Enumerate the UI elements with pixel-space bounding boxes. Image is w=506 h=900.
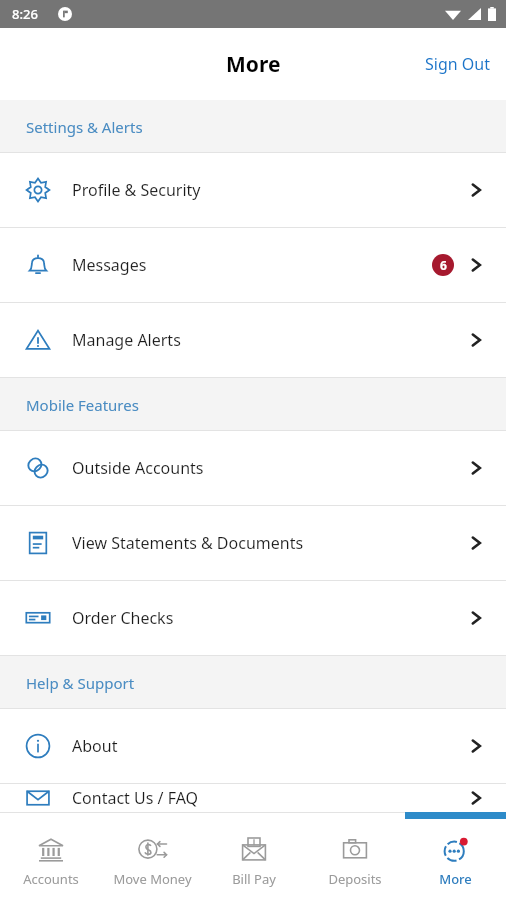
staticText: Manage Alerts bbox=[72, 329, 468, 351]
staticText: Mobile Features bbox=[26, 395, 139, 415]
staticText: 6 bbox=[440, 257, 447, 273]
button[interactable]: About bbox=[0, 709, 506, 784]
staticText: Messages bbox=[72, 254, 432, 276]
staticText: Sign Out bbox=[425, 53, 490, 75]
button[interactable]: Manage Alerts bbox=[0, 303, 506, 378]
staticText: Deposits bbox=[328, 870, 382, 888]
button[interactable]: Bill Pay bbox=[203, 812, 304, 900]
button[interactable]: View Statements & Documents bbox=[0, 506, 506, 581]
button[interactable]: More bbox=[405, 812, 506, 900]
staticText: More bbox=[439, 870, 472, 888]
button[interactable]: Deposits bbox=[304, 812, 405, 900]
button[interactable]: Accounts bbox=[0, 812, 102, 900]
button[interactable]: Outside Accounts bbox=[0, 431, 506, 506]
staticText: About bbox=[72, 735, 468, 757]
button[interactable]: Move Money bbox=[102, 812, 203, 900]
staticText: 8:26 bbox=[12, 5, 38, 23]
staticText: Accounts bbox=[23, 870, 79, 888]
button[interactable]: Order Checks bbox=[0, 581, 506, 656]
staticText: Bill Pay bbox=[232, 870, 276, 888]
staticText: Settings & Alerts bbox=[26, 117, 143, 137]
staticText: Move Money bbox=[113, 870, 192, 888]
staticText: Profile & Security bbox=[72, 179, 468, 201]
staticText: View Statements & Documents bbox=[72, 532, 468, 554]
staticText: Help & Support bbox=[26, 673, 135, 693]
staticText: Outside Accounts bbox=[72, 457, 468, 479]
button[interactable]: Messages bbox=[0, 228, 506, 303]
staticText: More bbox=[226, 50, 281, 79]
button[interactable]: Sign Out bbox=[409, 39, 506, 89]
button[interactable]: Contact Us / FAQ bbox=[0, 784, 506, 812]
staticText: Order Checks bbox=[72, 607, 468, 629]
staticText: Contact Us / FAQ bbox=[72, 787, 468, 809]
button[interactable]: Profile & Security bbox=[0, 153, 506, 228]
